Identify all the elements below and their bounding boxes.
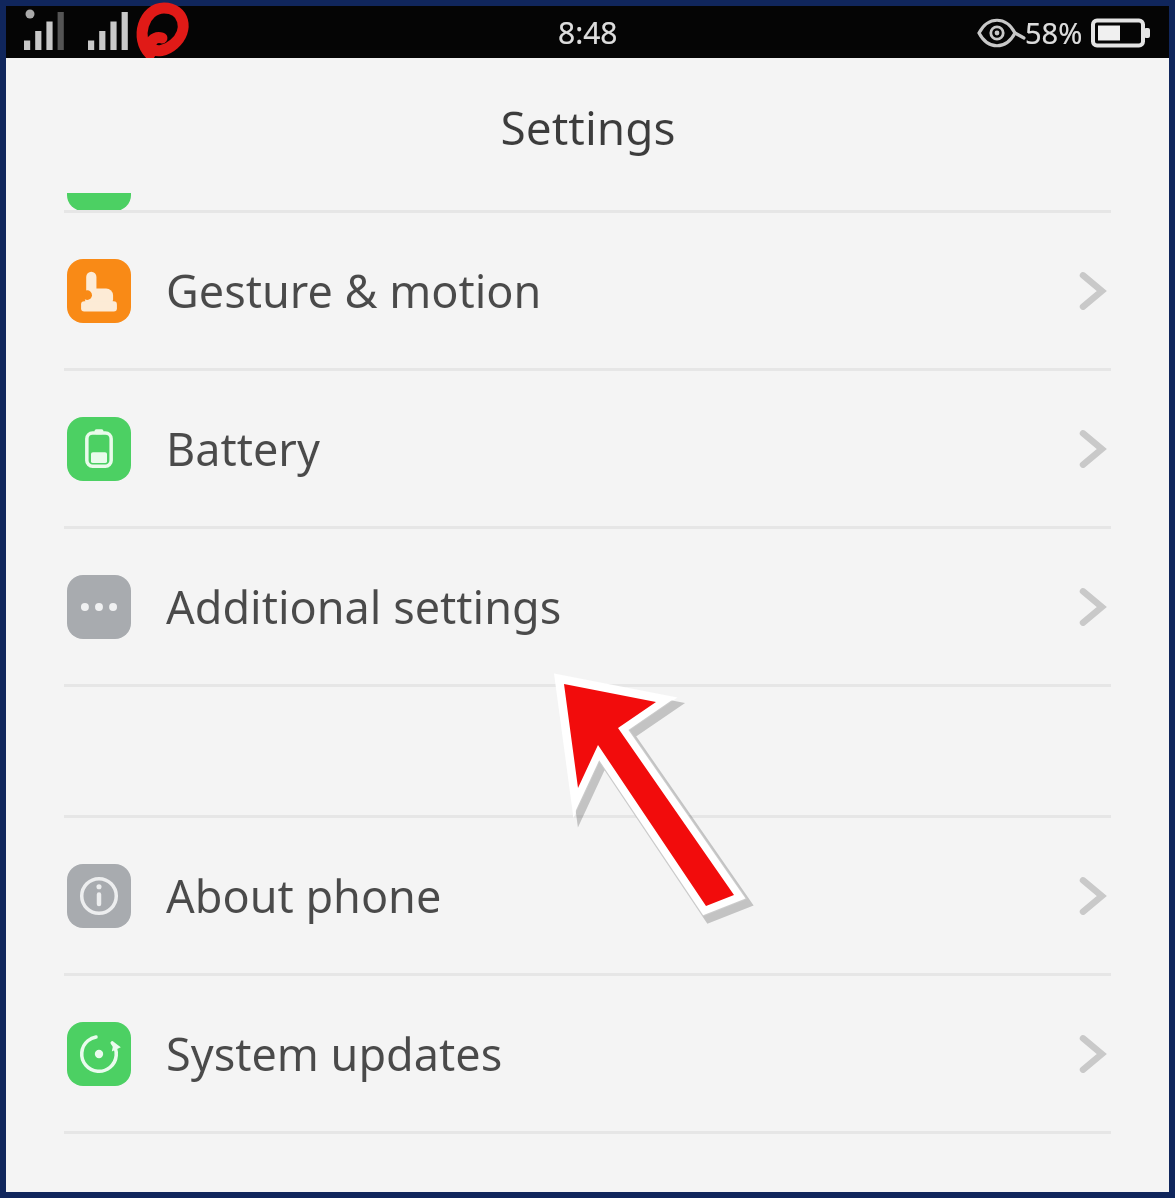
staticText: 8:48: [558, 12, 618, 53]
staticText: Battery: [166, 418, 1073, 479]
staticText: Additional settings: [166, 576, 1073, 637]
button[interactable]: Battery: [6, 371, 1169, 526]
button[interactable]: System updates: [6, 976, 1169, 1131]
staticText: Settings: [500, 96, 676, 159]
staticText: Gesture & motion: [166, 260, 1073, 321]
staticText: 58%: [1025, 13, 1083, 52]
button[interactable]: Additional settings: [6, 529, 1169, 684]
staticText: System updates: [166, 1023, 1073, 1084]
staticText: About phone: [166, 865, 1073, 926]
button[interactable]: Gesture & motion: [6, 213, 1169, 368]
button[interactable]: About phone: [6, 818, 1169, 973]
